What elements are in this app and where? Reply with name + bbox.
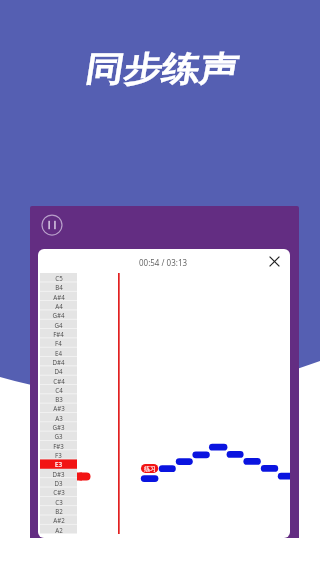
button[interactable]: B3 [40, 394, 77, 403]
button[interactable]: E4 [40, 348, 77, 357]
staticText: A#2 [53, 516, 65, 524]
button[interactable]: F3 [40, 450, 77, 459]
button[interactable]: C4 [40, 385, 77, 394]
staticText: D#4 [52, 358, 65, 366]
staticText: B2 [55, 507, 63, 515]
staticText: F3 [55, 451, 62, 459]
button[interactable]: A#3 [40, 403, 77, 412]
staticText: C5 [55, 274, 63, 282]
staticText: G#3 [52, 423, 65, 431]
staticText: B4 [55, 283, 63, 291]
button[interactable]: D4 [40, 366, 77, 375]
button[interactable]: G3 [40, 431, 77, 440]
staticText: F#4 [53, 330, 64, 338]
staticText: B3 [55, 395, 63, 403]
staticText: 00:54 / 03:13 [139, 257, 188, 268]
staticText: C#3 [53, 488, 65, 496]
staticText: G#4 [52, 311, 65, 319]
button[interactable]: A4 [40, 301, 77, 310]
button[interactable]: F#3 [40, 441, 77, 450]
staticText: 同步练声 [85, 48, 237, 91]
staticText: A3 [55, 414, 63, 422]
staticText: A#4 [53, 293, 65, 301]
staticText: C4 [55, 386, 63, 394]
button[interactable]: A3 [40, 413, 77, 422]
staticText: D4 [54, 367, 63, 375]
staticText: D#3 [52, 470, 65, 478]
button[interactable]: E3 [40, 459, 77, 468]
staticText: A2 [55, 526, 63, 534]
staticText: C#4 [53, 377, 65, 385]
button[interactable]: A#4 [40, 292, 77, 301]
button[interactable]: B4 [40, 282, 77, 291]
button[interactable]: C#4 [40, 376, 77, 385]
staticText: F#3 [53, 442, 64, 450]
staticText: G3 [54, 432, 63, 440]
button[interactable]: G#3 [40, 422, 77, 431]
staticText: E4 [55, 349, 62, 357]
button[interactable]: D#3 [40, 469, 77, 478]
button[interactable]: C#3 [40, 487, 77, 496]
staticText: D3 [54, 479, 63, 487]
button[interactable]: C5 [40, 273, 77, 282]
button[interactable]: A2 [40, 525, 77, 534]
button[interactable]: G4 [40, 320, 77, 329]
button[interactable]: F4 [40, 338, 77, 347]
button[interactable]: D#4 [40, 357, 77, 366]
staticText: C3 [55, 498, 63, 506]
staticText: E3 [55, 460, 62, 468]
staticText: A#3 [53, 404, 65, 412]
button[interactable]: B2 [40, 506, 77, 515]
button[interactable]: D3 [40, 478, 77, 487]
staticText: 练习 [144, 465, 156, 473]
button[interactable]: Close [265, 252, 283, 270]
button[interactable]: G#4 [40, 310, 77, 319]
staticText: F4 [55, 339, 62, 347]
button[interactable]: A#2 [40, 515, 77, 524]
button[interactable]: C3 [40, 497, 77, 506]
staticText: G4 [54, 321, 63, 329]
button[interactable]: Pause [41, 214, 63, 236]
button[interactable]: 练习 [141, 464, 158, 473]
staticText: A4 [55, 302, 63, 310]
button[interactable]: F#4 [40, 329, 77, 338]
